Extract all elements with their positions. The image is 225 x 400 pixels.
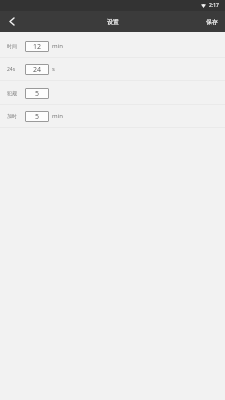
staticText: 5 xyxy=(35,89,40,99)
button[interactable]: 保存 xyxy=(199,11,225,32)
staticText: 12 xyxy=(33,42,42,52)
staticText: 时间 xyxy=(7,43,17,49)
button[interactable]: 加时 xyxy=(0,104,225,128)
button[interactable]: 24s xyxy=(0,57,225,81)
staticText: min xyxy=(52,42,63,50)
button[interactable]: Back xyxy=(0,11,23,32)
staticText: 设置 xyxy=(107,18,119,26)
staticText: min xyxy=(52,112,63,120)
staticText: 2:17 xyxy=(209,2,219,9)
staticText: 加时 xyxy=(7,113,17,119)
staticText: 保存 xyxy=(206,18,218,26)
button[interactable]: 犯规 xyxy=(0,81,225,105)
staticText: 24 xyxy=(33,65,42,75)
button[interactable]: 时间 xyxy=(0,34,225,58)
staticText: 犯规 xyxy=(7,90,17,96)
staticText: 5 xyxy=(35,112,40,122)
staticText: s xyxy=(52,65,55,73)
staticText: 24s xyxy=(7,66,16,73)
